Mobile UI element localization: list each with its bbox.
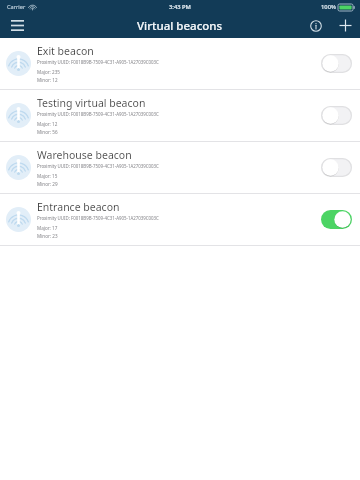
button[interactable]: Warehouse beacon — [0, 142, 360, 193]
staticText: Minor: 12 — [37, 77, 58, 83]
button[interactable]: Entrance beacon — [0, 194, 360, 245]
staticText: Carrier — [7, 3, 26, 11]
staticText: Testing virtual beacon — [37, 96, 146, 110]
button[interactable]: Add beacon — [330, 13, 360, 38]
staticText: Proximity UUID: F0018B9B-7509-4C31-A905-… — [37, 215, 159, 221]
staticText: 3:43 PM — [169, 3, 191, 11]
staticText: Major: 17 — [37, 225, 58, 231]
staticText: Minor: 56 — [37, 129, 58, 135]
button[interactable]: Beacon disabled — [321, 106, 352, 125]
button[interactable]: Beacon enabled — [321, 210, 352, 229]
button[interactable]: Beacon disabled — [321, 158, 352, 177]
button[interactable]: Testing virtual beacon — [0, 90, 360, 141]
staticText: Proximity UUID: F0018B9B-7509-4C31-A905-… — [37, 111, 159, 117]
button[interactable]: Beacon disabled — [321, 54, 352, 73]
staticText: Major: 15 — [37, 173, 58, 179]
staticText: Entrance beacon — [37, 200, 120, 214]
staticText: Minor: 29 — [37, 181, 58, 187]
staticText: Virtual beacons — [137, 18, 223, 34]
staticText: Warehouse beacon — [37, 148, 132, 162]
staticText: 100% — [321, 3, 336, 11]
staticText: Exit beacon — [37, 44, 94, 58]
staticText: Minor: 23 — [37, 233, 58, 239]
staticText: Major: 12 — [37, 121, 58, 127]
staticText: Proximity UUID: F0018B9B-7509-4C31-A905-… — [37, 59, 159, 65]
staticText: Proximity UUID: F0018B9B-7509-4C31-A905-… — [37, 163, 159, 169]
staticText: Major: 235 — [37, 69, 60, 75]
button[interactable]: Open navigation menu — [0, 13, 34, 38]
button[interactable]: Information — [302, 13, 330, 38]
button[interactable]: Exit beacon — [0, 38, 360, 89]
